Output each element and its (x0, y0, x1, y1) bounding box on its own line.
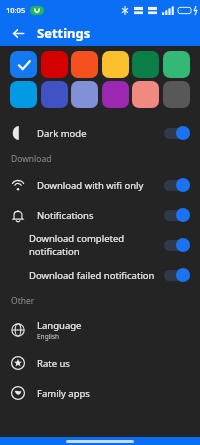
button[interactable]: Rate us (0, 348, 200, 378)
button[interactable] (10, 51, 37, 78)
button[interactable]: Family apps (0, 378, 200, 408)
button[interactable]: Back (9, 24, 27, 42)
button[interactable]: Download completed notification (0, 230, 200, 260)
staticText: Dark mode (37, 127, 87, 140)
button[interactable]: Download failed notification (0, 260, 200, 290)
button[interactable] (132, 51, 159, 78)
staticText: Notifications (37, 209, 94, 222)
staticText: Rate us (37, 357, 70, 370)
staticText: Settings (37, 24, 91, 42)
button[interactable] (163, 51, 190, 78)
staticText: Download completed notification (29, 232, 164, 258)
button[interactable]: Language (0, 312, 200, 348)
button[interactable]: Toggle (164, 237, 190, 253)
button[interactable] (102, 81, 129, 108)
staticText: Other (11, 295, 35, 307)
button[interactable]: Toggle (164, 177, 190, 193)
staticText: Download failed notification (29, 269, 155, 282)
button[interactable]: Toggle (164, 125, 190, 141)
button[interactable] (41, 51, 68, 78)
button[interactable]: Toggle (164, 267, 190, 283)
button[interactable]: Dark mode (0, 118, 200, 148)
button[interactable] (10, 81, 37, 108)
staticText: Language (37, 319, 82, 332)
button[interactable]: Toggle (164, 207, 190, 223)
button[interactable]: Download with wifi only (0, 170, 200, 200)
staticText: English (37, 332, 60, 341)
staticText: Download with wifi only (37, 179, 144, 192)
button[interactable]: Notifications (0, 200, 200, 230)
button[interactable] (102, 51, 129, 78)
button[interactable] (163, 81, 190, 108)
staticText: 10:05 (6, 5, 26, 15)
button[interactable] (71, 81, 98, 108)
button[interactable] (71, 51, 98, 78)
button[interactable] (41, 81, 68, 108)
button[interactable] (132, 81, 159, 108)
staticText: Download (11, 153, 52, 165)
staticText: Family apps (37, 387, 90, 400)
